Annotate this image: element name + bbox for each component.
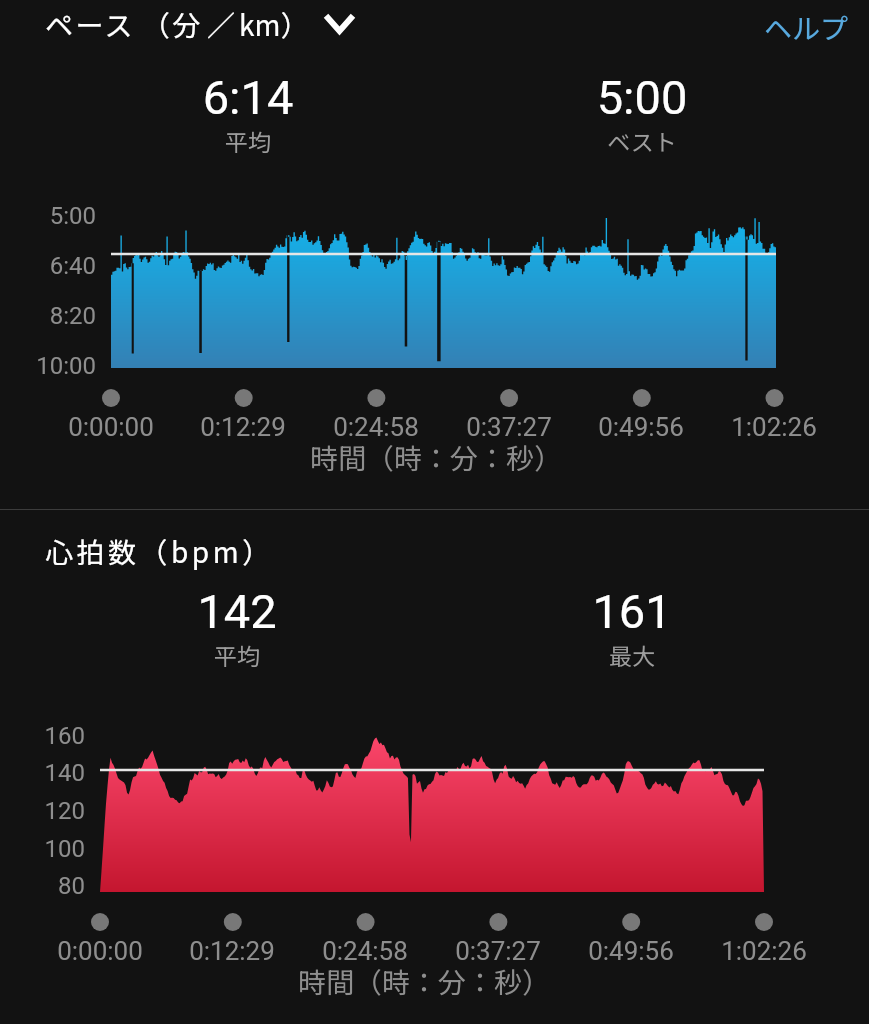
staticText: （分 (142, 4, 204, 45)
staticText: ヘルプ (764, 7, 849, 48)
staticText: 時間（時：分：秒） (224, 961, 624, 1002)
staticText: 140 (0, 759, 85, 787)
staticText: 1:02:26 (674, 936, 854, 966)
staticText: ペース (45, 4, 136, 45)
staticText: 6:14 (108, 70, 388, 125)
staticText: 1:02:26 (684, 412, 864, 442)
staticText: 0:00:00 (21, 412, 201, 442)
staticText: 0:12:29 (142, 936, 322, 966)
staticText: 10:00 (0, 352, 96, 380)
staticText: 161 (492, 584, 772, 639)
staticText: ベスト (502, 124, 782, 157)
staticText: ／ (207, 4, 236, 45)
staticText: 8:20 (0, 302, 96, 330)
staticText: 平均 (108, 124, 388, 157)
staticText: 0:37:27 (419, 412, 599, 442)
staticText: km） (239, 4, 309, 45)
staticText: 心拍数（bpm） (45, 531, 274, 572)
staticText: 0:12:29 (153, 412, 333, 442)
staticText: 120 (0, 797, 85, 825)
staticText: 5:00 (502, 70, 782, 125)
staticText: 最大 (492, 638, 772, 671)
staticText: 100 (0, 835, 85, 863)
staticText: 0:37:27 (408, 936, 588, 966)
staticText: 6:40 (0, 252, 96, 280)
button[interactable]: ヘルプ (764, 7, 849, 48)
staticText: 0:24:58 (286, 412, 466, 442)
staticText: 160 (0, 722, 85, 750)
button[interactable]: ペース（分／km） (45, 4, 354, 45)
staticText: 時間（時：分：秒） (236, 437, 636, 478)
staticText: 0:49:56 (551, 412, 731, 442)
staticText: 5:00 (0, 202, 96, 230)
staticText: 80 (0, 872, 85, 900)
staticText: 0:24:58 (275, 936, 455, 966)
staticText: 142 (97, 584, 377, 639)
staticText: 0:49:56 (541, 936, 721, 966)
staticText: 平均 (97, 638, 377, 671)
staticText: 0:00:00 (10, 936, 190, 966)
